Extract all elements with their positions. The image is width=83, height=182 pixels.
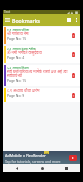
button[interactable]: Delete bookmark bbox=[69, 88, 80, 102]
staticText: ५.२ अध्याय तिसरा bbox=[7, 65, 29, 69]
button[interactable]: १.१ अध्याय पहिला bbox=[4, 27, 80, 44]
staticText: ॐ नमो भगवते वासुदेवाय bbox=[7, 50, 42, 55]
staticText: Page No: 9 bbox=[7, 93, 25, 98]
button[interactable]: Back bbox=[7, 164, 27, 172]
staticText: Tap for tutorials, screens and more bbox=[5, 159, 61, 164]
button[interactable]: AdMobile x FlexRender bbox=[3, 151, 80, 164]
staticText: AdMobile x FlexRender bbox=[5, 153, 46, 158]
staticText: Text bbox=[4, 10, 11, 14]
button[interactable]: ८.१ अध्याय चौथा प्रारंभ bbox=[4, 88, 80, 102]
staticText: Page No: 15 bbox=[7, 78, 27, 83]
staticText: Bookmarks bbox=[12, 17, 41, 24]
staticText: सर्व धर्मान्परित्यज्य मामेकं शरणं व्रज अ… bbox=[7, 69, 69, 78]
button[interactable]: २.३ अध्याय दुसरा श्लोक bbox=[4, 46, 80, 63]
button[interactable]: Delete bookmark bbox=[69, 65, 80, 86]
staticText: Page No: 15 bbox=[7, 36, 27, 41]
staticText: ८.१ अध्याय चौथा प्रारंभ bbox=[7, 88, 40, 93]
button[interactable]: ५.२ अध्याय तिसरा bbox=[4, 65, 80, 86]
staticText: श्री गणेशाय नमः bbox=[7, 31, 29, 36]
staticText: Page No: 4 bbox=[7, 55, 25, 60]
button[interactable]: Home bbox=[32, 164, 52, 172]
staticText: २.३ अध्याय दुसरा श्लोक bbox=[7, 46, 36, 50]
button[interactable]: Delete bookmark bbox=[69, 46, 80, 63]
button[interactable]: Navigation menu bbox=[3, 14, 12, 26]
button[interactable]: Search bbox=[64, 14, 73, 26]
button[interactable]: Delete bookmark bbox=[69, 27, 80, 44]
button[interactable]: Recent apps bbox=[56, 164, 76, 172]
staticText: १.१ अध्याय पहिला bbox=[7, 27, 30, 31]
button[interactable]: More options bbox=[73, 14, 80, 26]
staticText: Ad bbox=[45, 151, 48, 154]
button[interactable]: Play video bbox=[69, 155, 77, 161]
